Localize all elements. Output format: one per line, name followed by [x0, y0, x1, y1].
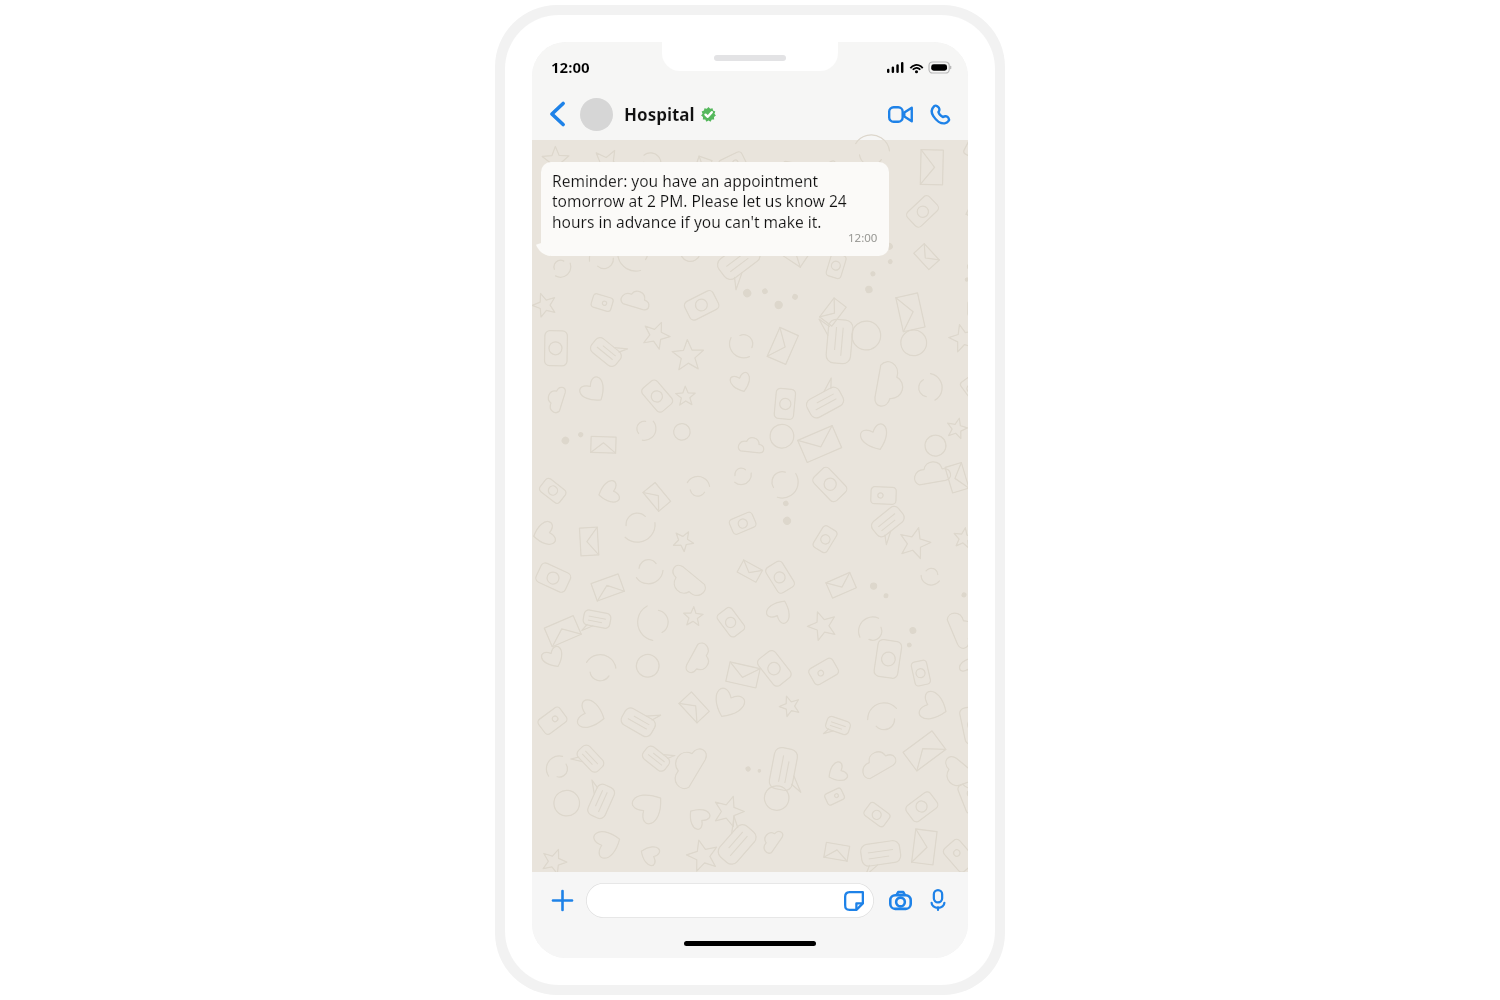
staticText: 12:00	[848, 230, 878, 246]
button[interactable]: Attach	[544, 882, 580, 918]
staticText: Hospital	[624, 103, 695, 126]
button[interactable]: Message input	[586, 883, 874, 918]
staticText: 12:00	[551, 57, 590, 77]
button[interactable]: Back	[540, 96, 576, 132]
button[interactable]: Hospital	[580, 98, 880, 131]
button[interactable]: Stickers	[843, 890, 865, 912]
button[interactable]: Reminder: you have an appointment tomorr…	[541, 162, 889, 256]
button[interactable]: Camera	[882, 882, 918, 918]
button[interactable]: Video call	[880, 94, 920, 134]
staticText: Reminder: you have an appointment tomorr…	[552, 170, 878, 233]
button[interactable]: Voice call	[920, 94, 960, 134]
button[interactable]: Voice message	[920, 882, 956, 918]
